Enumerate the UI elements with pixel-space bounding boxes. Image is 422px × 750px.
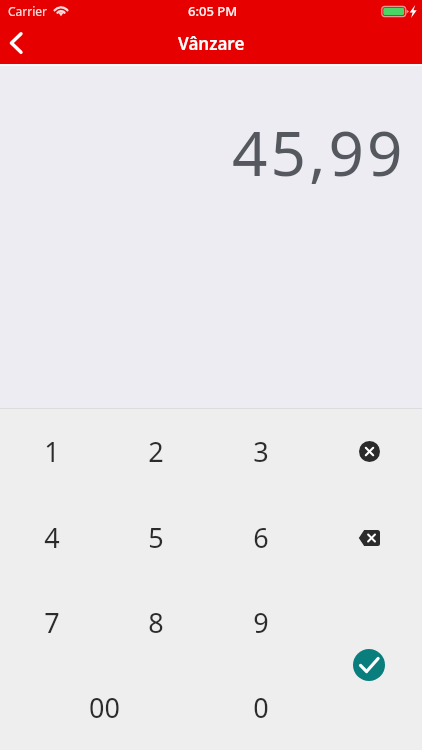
staticText: 8 xyxy=(148,604,164,641)
staticText: 5 xyxy=(148,519,164,556)
staticText: 6 xyxy=(253,519,269,556)
staticText: 6:05 PM xyxy=(188,2,238,20)
button[interactable]: 9 xyxy=(209,580,313,665)
button[interactable]: 2 xyxy=(104,409,208,494)
button[interactable]: 00 xyxy=(0,665,208,750)
staticText: 0 xyxy=(253,689,269,726)
staticText: 3 xyxy=(253,433,269,470)
staticText: Vânzare xyxy=(178,32,245,55)
button[interactable]: 4 xyxy=(0,495,104,580)
button[interactable]: Clear xyxy=(317,409,421,494)
button[interactable]: Backspace xyxy=(317,495,421,580)
button[interactable]: Confirm xyxy=(317,580,421,750)
staticText: Carrier xyxy=(8,3,48,19)
button[interactable]: 1 xyxy=(0,409,104,494)
button[interactable]: 0 xyxy=(209,665,313,750)
staticText: 2 xyxy=(148,433,164,470)
button[interactable]: 3 xyxy=(209,409,313,494)
button[interactable]: 8 xyxy=(104,580,208,665)
staticText: 7 xyxy=(44,604,60,641)
button[interactable]: 6 xyxy=(209,495,313,580)
staticText: 1 xyxy=(44,433,60,470)
staticText: 4 xyxy=(44,519,60,556)
staticText: 00 xyxy=(89,689,120,726)
staticText: 45,99 xyxy=(232,110,406,194)
button[interactable]: 5 xyxy=(104,495,208,580)
button[interactable]: 7 xyxy=(0,580,104,665)
button[interactable]: Back xyxy=(0,22,32,64)
staticText: 9 xyxy=(253,604,269,641)
